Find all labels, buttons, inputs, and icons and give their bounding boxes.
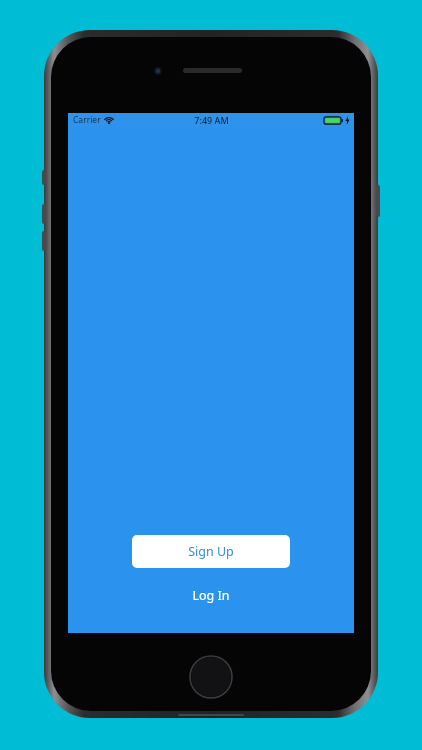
button[interactable]: Sign Up xyxy=(132,535,290,568)
staticText: 7:49 AM xyxy=(194,114,229,126)
button[interactable]: Log In xyxy=(132,581,290,609)
staticText: Carrier xyxy=(73,114,101,126)
staticText: Log In xyxy=(192,587,230,604)
staticText: Sign Up xyxy=(188,543,234,560)
